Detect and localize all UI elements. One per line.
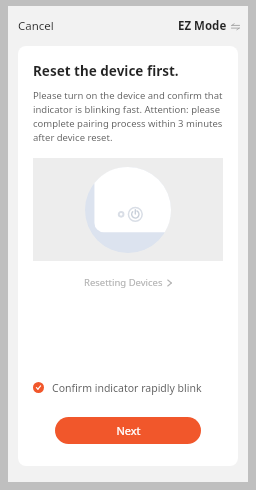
button[interactable]: EZ Mode bbox=[170, 12, 248, 40]
staticText: EZ Mode bbox=[178, 18, 227, 34]
staticText: Reset the device first. bbox=[33, 62, 179, 80]
other: Switch mode bbox=[231, 22, 240, 31]
staticText: Confirm indicator rapidly blink bbox=[52, 381, 202, 395]
staticText: Please turn on the device and confirm th… bbox=[33, 89, 223, 144]
staticText: Next bbox=[116, 423, 141, 438]
button[interactable]: Cancel bbox=[8, 12, 64, 40]
button[interactable]: Confirm indicator rapidly blink bbox=[33, 377, 223, 399]
button[interactable]: Next bbox=[55, 417, 201, 444]
staticText: Cancel bbox=[18, 18, 54, 34]
staticText: Resetting Devices bbox=[84, 276, 163, 289]
button[interactable]: Resetting Devices bbox=[76, 272, 180, 293]
